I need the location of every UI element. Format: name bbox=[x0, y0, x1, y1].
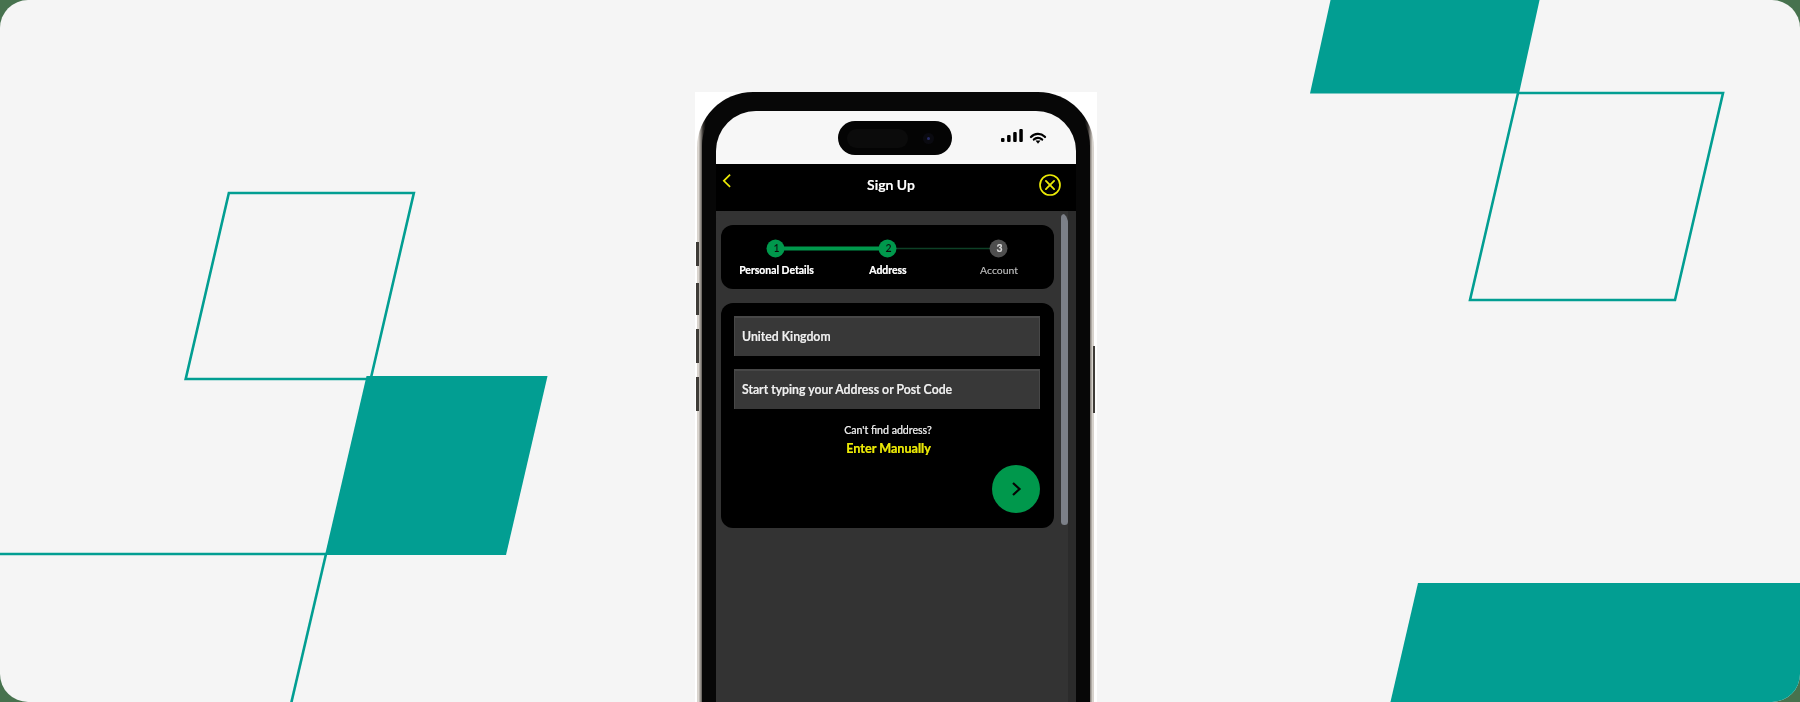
staticText: Enter Manually bbox=[846, 441, 931, 456]
staticText: Address bbox=[869, 264, 907, 276]
staticText: 3 bbox=[996, 242, 1003, 255]
staticText: 1 bbox=[773, 242, 780, 255]
button[interactable]: Close bbox=[1035, 170, 1065, 200]
staticText: Start typing your Address or Post Code bbox=[742, 382, 953, 397]
button[interactable]: Next bbox=[992, 465, 1040, 513]
button[interactable]: Back bbox=[716, 172, 746, 202]
staticText: Account bbox=[980, 264, 1018, 276]
button[interactable]: United Kingdom bbox=[734, 316, 1040, 356]
staticText: Sign Up bbox=[867, 176, 915, 193]
staticText: Can't find address? bbox=[844, 424, 932, 437]
staticText: United Kingdom bbox=[742, 329, 831, 344]
button[interactable]: Start typing your Address or Post Code bbox=[734, 369, 1040, 409]
button[interactable]: Enter Manually bbox=[798, 440, 978, 457]
staticText: 2 bbox=[885, 242, 892, 255]
staticText: Personal Details bbox=[739, 264, 814, 276]
